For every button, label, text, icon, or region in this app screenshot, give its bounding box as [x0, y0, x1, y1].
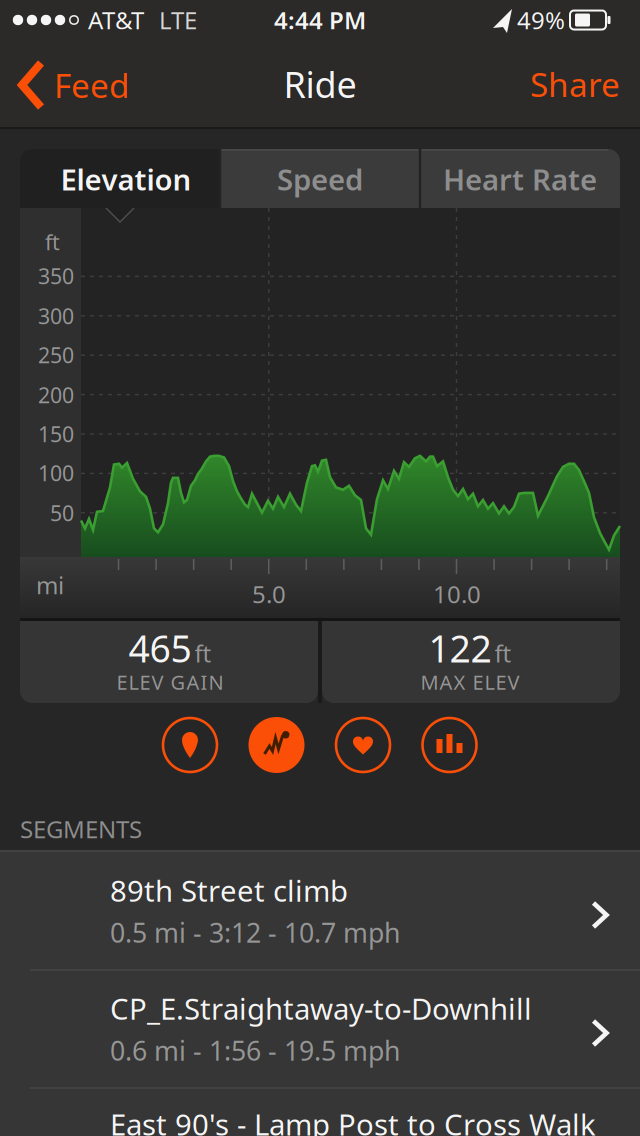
staticText: 122: [428, 623, 491, 673]
button[interactable]: Speed: [220, 149, 420, 208]
staticText: 4:44 PM: [274, 4, 366, 36]
staticText: Feed: [54, 63, 130, 107]
button[interactable]: East 90's - Lamp Post to Cross Walk: [0, 1088, 640, 1136]
staticText: ft: [494, 637, 511, 669]
staticText: CP_E.Straightaway-to-Downhill: [110, 989, 532, 1028]
staticText: AT&T: [88, 4, 144, 36]
staticText: 100: [38, 459, 74, 487]
staticText: 0.6 mi - 1:56 - 19.5 mph: [110, 1033, 400, 1068]
button[interactable]: Heart Rate: [408, 149, 620, 220]
staticText: LTE: [159, 4, 197, 36]
staticText: 5.0: [252, 578, 286, 610]
staticText: Heart Rate: [443, 159, 597, 198]
staticText: mi: [36, 569, 64, 601]
staticText: 0.5 mi - 3:12 - 10.7 mph: [110, 915, 400, 950]
staticText: 10.0: [433, 578, 481, 610]
staticText: Ride: [283, 60, 356, 108]
staticText: 465: [128, 623, 191, 673]
staticText: Share: [530, 62, 620, 106]
button[interactable]: Share: [470, 42, 620, 126]
button[interactable]: Analysis: [247, 716, 305, 774]
staticText: East 90's - Lamp Post to Cross Walk: [110, 1104, 596, 1136]
staticText: Speed: [277, 159, 363, 198]
staticText: SEGMENTS: [20, 813, 142, 845]
button[interactable]: Back to Feed: [14, 43, 174, 127]
staticText: 50: [50, 499, 74, 527]
staticText: Elevation: [60, 159, 191, 198]
button[interactable]: 89th Street climb: [0, 852, 640, 969]
staticText: 200: [38, 381, 74, 409]
staticText: 250: [38, 341, 74, 369]
staticText: ELEV GAIN: [116, 669, 223, 695]
staticText: 150: [38, 420, 74, 448]
staticText: 49%: [517, 4, 565, 36]
staticText: 300: [38, 302, 74, 330]
button[interactable]: Map: [161, 716, 219, 774]
staticText: 350: [38, 262, 74, 290]
staticText: ft: [45, 228, 60, 256]
button[interactable]: Statistics: [420, 716, 478, 774]
button[interactable]: CP_E.Straightaway-to-Downhill: [0, 970, 640, 1087]
staticText: ft: [194, 637, 211, 669]
button[interactable]: Elevation: [20, 149, 232, 220]
staticText: 89th Street climb: [110, 871, 348, 910]
staticText: MAX ELEV: [420, 669, 519, 695]
button[interactable]: Heart rate: [334, 716, 392, 774]
